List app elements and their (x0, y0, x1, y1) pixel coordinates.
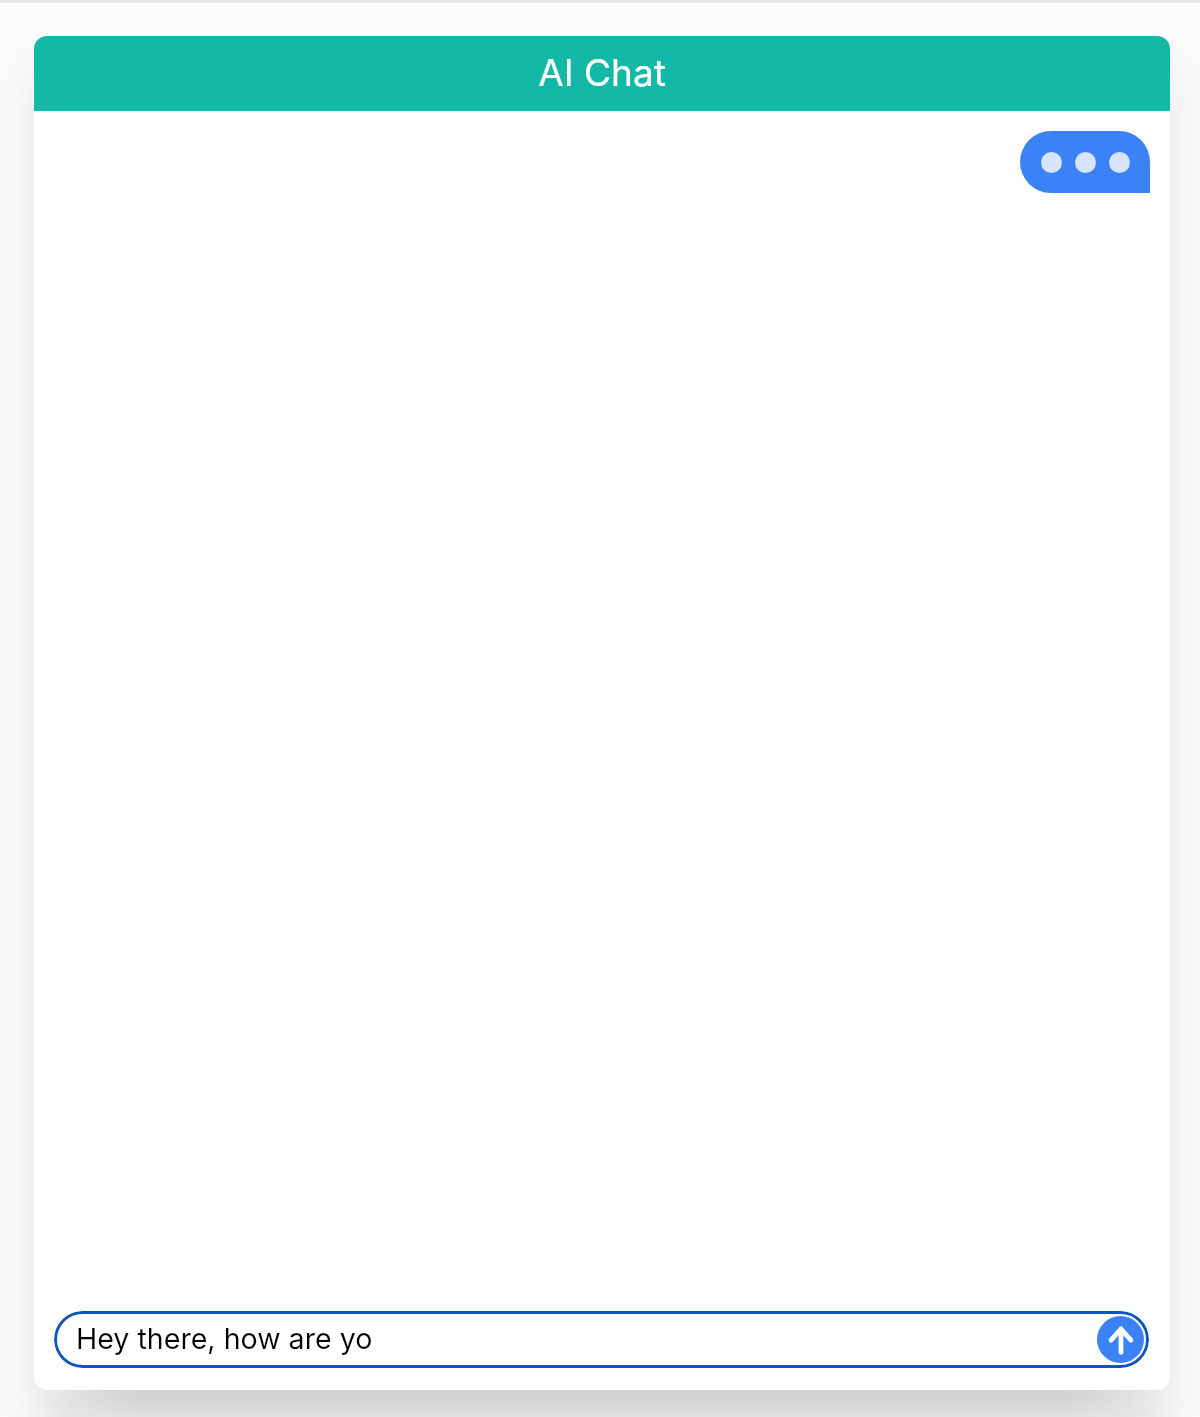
button[interactable]: Send message (1097, 1316, 1144, 1363)
button[interactable]: Hey there, how are yo (54, 1311, 1149, 1368)
staticText: AI Chat (538, 50, 666, 95)
button[interactable]: Assistant is typing (1020, 131, 1150, 193)
staticText: Hey there, how are yo (76, 1321, 373, 1356)
